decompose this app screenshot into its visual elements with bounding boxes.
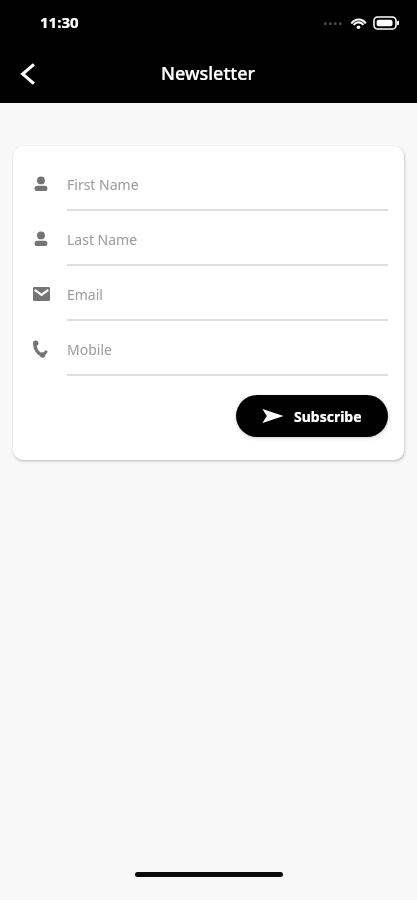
button[interactable]: Subscribe bbox=[236, 395, 388, 437]
staticText: Subscribe bbox=[294, 407, 362, 426]
staticText: Last Name bbox=[67, 230, 138, 249]
staticText: First Name bbox=[67, 175, 139, 194]
button[interactable]: Mobile bbox=[33, 333, 388, 365]
button[interactable]: Last Name bbox=[33, 223, 388, 255]
button[interactable]: Back bbox=[6, 52, 50, 96]
staticText: Mobile bbox=[67, 340, 112, 359]
staticText: 11:30 bbox=[40, 12, 79, 32]
staticText: Newsletter bbox=[161, 61, 256, 86]
button[interactable]: Email bbox=[33, 278, 388, 310]
staticText: Email bbox=[67, 285, 103, 304]
button[interactable]: First Name bbox=[33, 168, 388, 200]
